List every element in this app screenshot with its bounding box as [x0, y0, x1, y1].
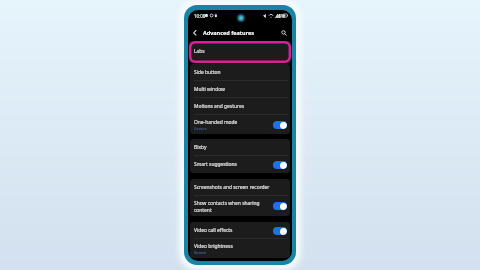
staticText: One-handed mode — [194, 119, 238, 126]
staticText: Motions and gestures — [194, 103, 244, 110]
staticText: 45% — [276, 13, 285, 19]
button[interactable]: Toggle on — [273, 161, 287, 169]
staticText: 10:08 — [194, 13, 206, 19]
button[interactable]: Search — [279, 28, 289, 38]
button[interactable]: Multi window — [190, 81, 290, 98]
staticText: Bixby — [194, 144, 207, 151]
button[interactable]: Screenshots and screen recorder — [190, 179, 290, 196]
button[interactable]: Labs — [189, 41, 291, 63]
staticText: Video brightness — [194, 243, 233, 250]
staticText: Advanced features — [203, 29, 255, 37]
staticText: Gesture — [194, 126, 207, 131]
staticText: Show contacts when sharing — [194, 200, 260, 207]
staticText: Multi window — [194, 86, 225, 93]
button[interactable]: Toggle on — [273, 202, 287, 210]
button[interactable]: Show contacts when sharing — [190, 196, 290, 216]
button[interactable]: Bixby — [190, 139, 290, 156]
staticText: Video call effects — [194, 227, 233, 234]
staticText: Smart suggestions — [194, 161, 237, 168]
button[interactable]: Smart suggestions — [190, 156, 290, 173]
button[interactable]: Side button — [190, 64, 290, 81]
staticText: Labs — [194, 48, 205, 55]
button[interactable]: Navigate up — [190, 28, 200, 38]
staticText: content — [194, 207, 212, 214]
button[interactable]: Toggle on — [273, 121, 287, 129]
button[interactable]: Toggle on — [273, 227, 287, 235]
button[interactable]: One-handed mode — [190, 115, 290, 134]
staticText: Screenshots and screen recorder — [194, 184, 270, 191]
button[interactable]: Video call effects — [190, 222, 290, 239]
button[interactable]: Video brightness — [190, 239, 290, 258]
staticText: Normal — [194, 250, 206, 255]
staticText: Side button — [194, 69, 221, 76]
button[interactable]: Motions and gestures — [190, 98, 290, 115]
